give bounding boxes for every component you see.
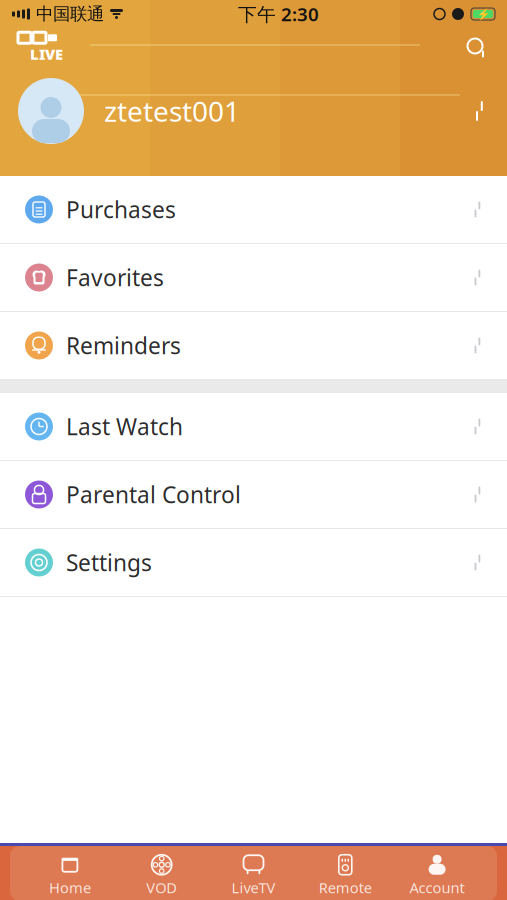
staticText: 中国联通: [36, 3, 104, 25]
staticText: Parental Control: [66, 479, 241, 509]
staticText: Home: [49, 878, 91, 897]
staticText: ⚡: [476, 8, 489, 20]
staticText: VOD: [146, 878, 177, 897]
button[interactable]: Account: [391, 854, 483, 897]
staticText: Purchases: [66, 194, 176, 224]
button[interactable]: ztetest001: [0, 68, 507, 154]
button[interactable]: Home: [24, 854, 116, 897]
button[interactable]: LiveTV: [208, 854, 299, 897]
staticText: LiveTV: [231, 878, 275, 897]
button[interactable]: VOD: [116, 854, 208, 897]
staticText: Last Watch: [66, 411, 183, 441]
staticText: Reminders: [66, 330, 181, 360]
button[interactable]: Reminders: [0, 312, 507, 379]
staticText: ztetest001: [104, 92, 240, 130]
staticText: Remote: [319, 878, 372, 897]
staticText: Settings: [66, 547, 152, 577]
button[interactable]: Remote: [299, 854, 391, 897]
staticText: Account: [410, 878, 465, 897]
button[interactable]: Parental Control: [0, 461, 507, 528]
button[interactable]: Settings: [0, 529, 507, 596]
staticText: Favorites: [66, 262, 164, 292]
button[interactable]: Favorites: [0, 244, 507, 311]
button[interactable]: Purchases: [0, 176, 507, 243]
staticText: 下午 2:30: [238, 2, 319, 26]
staticText: LIVE: [30, 44, 63, 64]
button[interactable]: Last Watch: [0, 393, 507, 460]
button[interactable]: Search: [455, 26, 499, 70]
